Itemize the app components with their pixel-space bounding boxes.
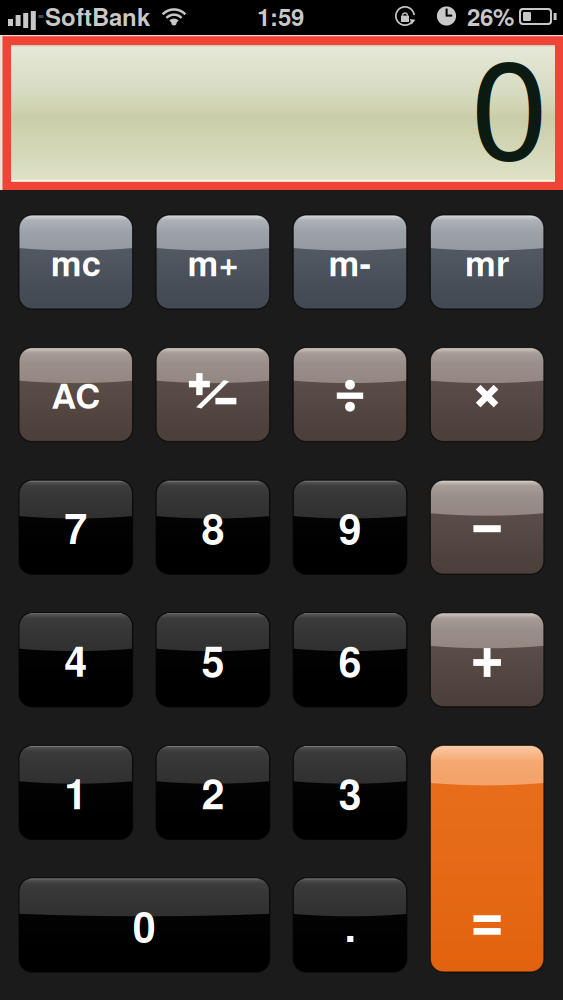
staticText: 4 (64, 630, 87, 689)
button[interactable]: 8 (156, 480, 270, 574)
button[interactable]: Equals (430, 745, 544, 972)
staticText: 8 (201, 498, 224, 557)
button[interactable]: 9 (293, 480, 407, 574)
staticText: SoftBank (45, 0, 150, 33)
button[interactable]: AC (19, 348, 133, 442)
button[interactable]: Divide (293, 348, 407, 442)
button[interactable]: 4 (19, 613, 133, 707)
button[interactable]: 3 (293, 745, 407, 839)
staticText: AC (51, 370, 100, 419)
staticText: . (344, 895, 355, 955)
staticText: mc (51, 237, 101, 287)
button[interactable]: 6 (293, 613, 407, 707)
staticText: 1:59 (257, 0, 304, 33)
button[interactable]: Multiply (430, 348, 544, 442)
staticText: m+ (187, 237, 238, 287)
button[interactable]: Minus (430, 480, 544, 574)
button[interactable]: Plus (430, 613, 544, 707)
button[interactable]: mr (430, 215, 544, 309)
staticText: 5 (201, 630, 224, 689)
staticText: 9 (338, 498, 361, 557)
button[interactable]: Plus minus (156, 348, 270, 442)
staticText: 3 (338, 763, 361, 822)
button[interactable]: 5 (156, 613, 270, 707)
staticText: 0 (471, 1, 548, 199)
button[interactable]: 2 (156, 745, 270, 839)
staticText: m- (328, 237, 371, 287)
button[interactable]: . (293, 878, 407, 972)
button[interactable]: 1 (19, 745, 133, 839)
staticText: 0 (133, 895, 156, 955)
staticText: 2 (201, 763, 224, 822)
staticText: 7 (64, 498, 87, 557)
staticText: 1 (64, 763, 87, 822)
button[interactable]: m- (293, 215, 407, 309)
button[interactable]: mc (19, 215, 133, 309)
staticText: 26% (467, 0, 514, 33)
button[interactable]: m+ (156, 215, 270, 309)
button[interactable]: 7 (19, 480, 133, 574)
staticText: 6 (338, 630, 361, 689)
staticText: mr (465, 237, 509, 287)
button[interactable]: 0 (19, 878, 270, 972)
